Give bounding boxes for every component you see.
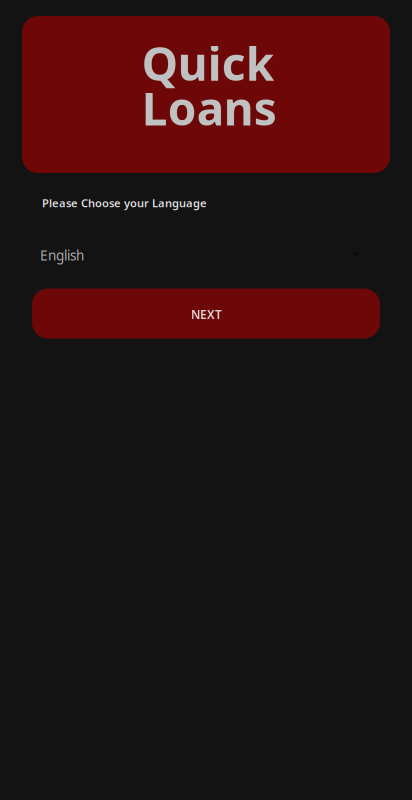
- button[interactable]: NEXT: [32, 288, 380, 338]
- button[interactable]: English: [32, 231, 380, 279]
- staticText: Please Choose your Language: [42, 195, 207, 211]
- staticText: NEXT: [191, 306, 222, 322]
- staticText: Loans: [142, 76, 277, 139]
- staticText: English: [40, 246, 84, 264]
- staticText: Quick: [142, 32, 274, 94]
